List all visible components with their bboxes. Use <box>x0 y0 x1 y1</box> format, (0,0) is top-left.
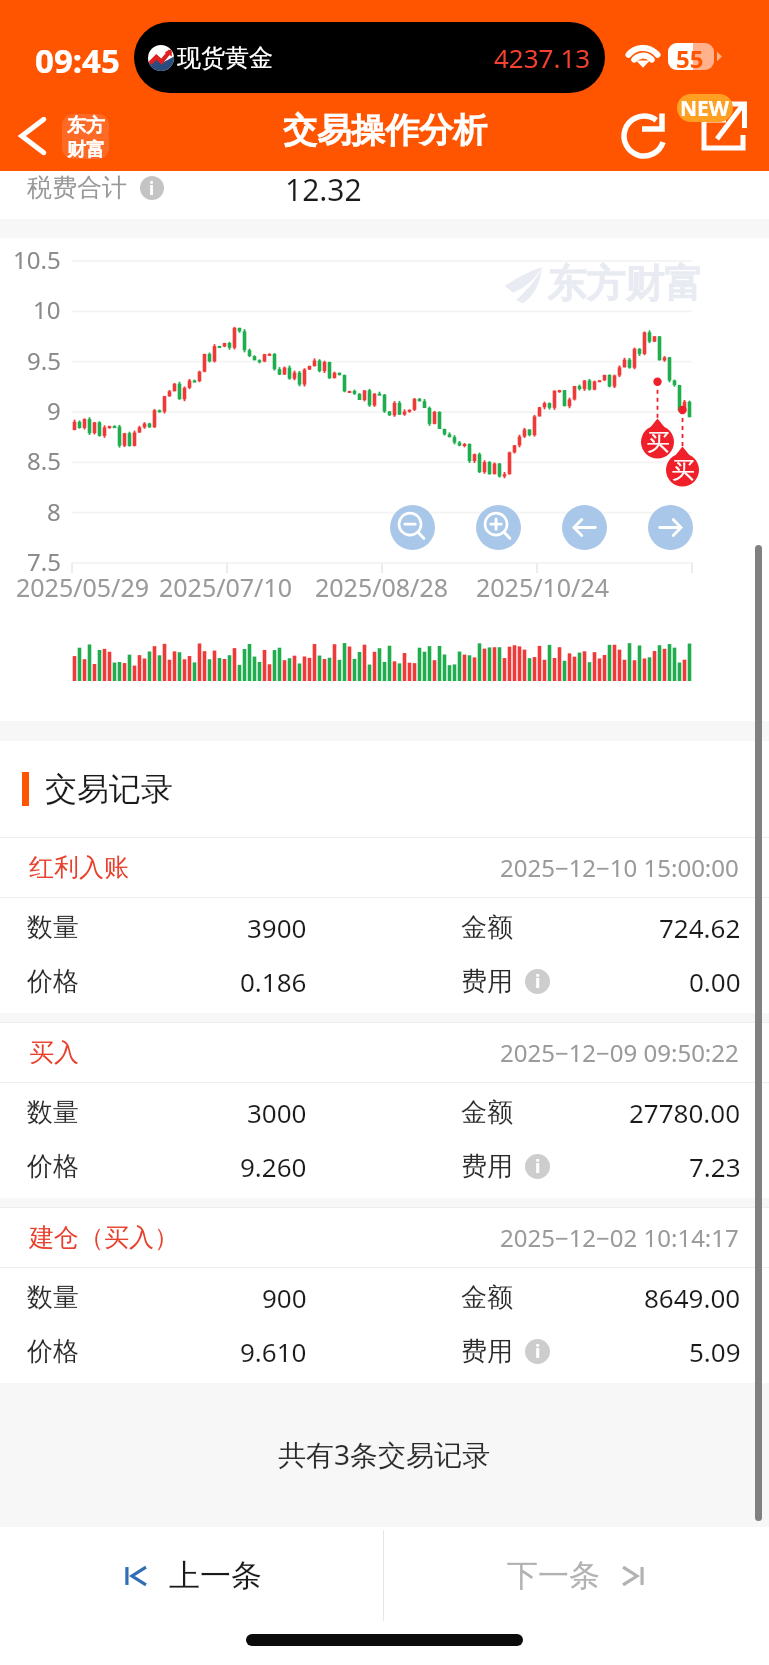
staticText: 价格 <box>27 1335 79 1368</box>
staticText: i <box>535 969 541 994</box>
button[interactable]: Share <box>696 95 752 151</box>
staticText: 共有3条交易记录 <box>278 1435 491 1473</box>
staticText: 8 <box>47 495 61 528</box>
staticText: 税费合计 <box>27 172 127 203</box>
staticText: 交易记录 <box>45 769 173 809</box>
button[interactable]: Pan left <box>562 505 607 550</box>
staticText: 费用 <box>461 965 513 998</box>
button[interactable]: 买入 <box>0 1022 769 1198</box>
staticText: 费用 <box>461 1335 513 1368</box>
button[interactable]: 东方 <box>62 114 109 159</box>
staticText: 724.62 <box>659 910 741 945</box>
staticText: 3000 <box>247 1095 307 1130</box>
staticText: 2025−12−10 15:00:00 <box>500 851 739 884</box>
staticText: 0.186 <box>240 964 307 999</box>
staticText: 10 <box>33 293 61 326</box>
staticText: 8649.00 <box>644 1280 741 1315</box>
staticText: i <box>535 1154 541 1179</box>
staticText: 55 <box>676 42 704 69</box>
staticText: 建仓（买入） <box>29 1222 179 1253</box>
staticText: 9 <box>47 394 61 427</box>
staticText: 2025/05/29 <box>16 570 150 604</box>
staticText: 红利入账 <box>29 852 129 883</box>
staticText: 2025/10/24 <box>476 570 610 604</box>
staticText: 09:45 <box>35 38 120 83</box>
staticText: 4237.13 <box>494 40 591 75</box>
staticText: 9.260 <box>240 1149 307 1184</box>
staticText: 上一条 <box>169 1556 262 1595</box>
staticText: NEW <box>680 94 730 122</box>
staticText: 东方 <box>67 114 105 138</box>
staticText: 费用 <box>461 1150 513 1183</box>
staticText: 9.5 <box>27 344 61 377</box>
staticText: 交易操作分析 <box>283 109 487 152</box>
staticText: 金额 <box>461 1281 513 1314</box>
staticText: 买 <box>647 428 670 457</box>
staticText: 2025/08/28 <box>315 570 449 604</box>
button[interactable]: 下一条 <box>384 1527 769 1624</box>
staticText: i <box>149 177 155 200</box>
button[interactable]: Refresh <box>616 108 672 164</box>
staticText: 财富 <box>67 138 105 159</box>
staticText: 2025/07/10 <box>159 570 293 604</box>
staticText: 价格 <box>27 965 79 998</box>
staticText: 27780.00 <box>629 1095 741 1130</box>
staticText: 12.32 <box>285 169 362 210</box>
staticText: i <box>535 1339 541 1364</box>
staticText: 下一条 <box>507 1556 600 1595</box>
staticText: 900 <box>262 1280 307 1315</box>
staticText: 2025−12−09 09:50:22 <box>500 1036 739 1069</box>
staticText: 金额 <box>461 1096 513 1129</box>
button[interactable]: Zoom out <box>390 505 435 550</box>
staticText: 买入 <box>29 1037 79 1068</box>
staticText: 数量 <box>27 1096 79 1129</box>
staticText: 现货黄金 <box>177 43 273 73</box>
staticText: 9.610 <box>240 1334 307 1369</box>
staticText: 东方财富 <box>547 259 703 308</box>
staticText: 金额 <box>461 911 513 944</box>
button[interactable]: Back <box>12 111 62 161</box>
staticText: 8.5 <box>27 444 61 477</box>
staticText: 数量 <box>27 1281 79 1314</box>
staticText: 2025−12−02 10:14:17 <box>500 1221 739 1254</box>
button[interactable]: 上一条 <box>0 1527 385 1624</box>
staticText: 0.00 <box>689 964 741 999</box>
staticText: 买 <box>672 456 695 485</box>
staticText: 5.09 <box>689 1334 741 1369</box>
button[interactable]: Pan right <box>648 505 693 550</box>
staticText: 价格 <box>27 1150 79 1183</box>
staticText: 7.23 <box>689 1149 741 1184</box>
staticText: 7.5 <box>27 545 61 578</box>
button[interactable]: Zoom in <box>476 505 521 550</box>
staticText: 3900 <box>247 910 307 945</box>
staticText: 10.5 <box>13 243 61 276</box>
button[interactable]: 建仓（买入） <box>0 1207 769 1383</box>
button[interactable]: 红利入账 <box>0 837 769 1013</box>
staticText: 数量 <box>27 911 79 944</box>
